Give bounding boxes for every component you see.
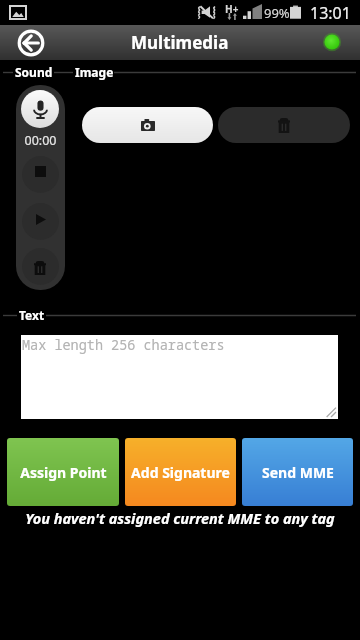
staticText: H+ bbox=[225, 2, 239, 16]
staticText: 13:01 bbox=[310, 2, 351, 24]
button[interactable]: Play bbox=[22, 203, 59, 240]
button[interactable]: Stop bbox=[22, 156, 59, 193]
button[interactable]: Max length 256 characters bbox=[21, 335, 338, 419]
button[interactable]: Delete sound bbox=[22, 248, 59, 285]
staticText: You haven't assigned current MME to any … bbox=[0, 508, 360, 528]
staticText: Add Signature bbox=[131, 463, 230, 482]
staticText: 99% bbox=[264, 4, 290, 22]
button[interactable]: Delete image bbox=[218, 107, 350, 143]
staticText: Sound bbox=[15, 64, 53, 80]
staticText: 00:00 bbox=[16, 132, 65, 149]
staticText: Max length 256 characters bbox=[22, 336, 225, 354]
button[interactable]: Record sound bbox=[21, 90, 59, 128]
staticText: Send MME bbox=[262, 463, 334, 482]
staticText: Multimedia bbox=[131, 31, 229, 54]
button[interactable]: Back bbox=[17, 29, 45, 57]
button[interactable]: Assign Point bbox=[7, 438, 119, 506]
button[interactable]: Send MME bbox=[242, 438, 353, 506]
staticText: Assign Point bbox=[20, 463, 107, 482]
button[interactable]: Connection status bbox=[322, 32, 342, 52]
button[interactable]: Add Signature bbox=[125, 438, 236, 506]
staticText: Text bbox=[19, 307, 45, 323]
staticText: Image bbox=[75, 64, 114, 80]
button[interactable]: Take photo bbox=[82, 107, 213, 143]
